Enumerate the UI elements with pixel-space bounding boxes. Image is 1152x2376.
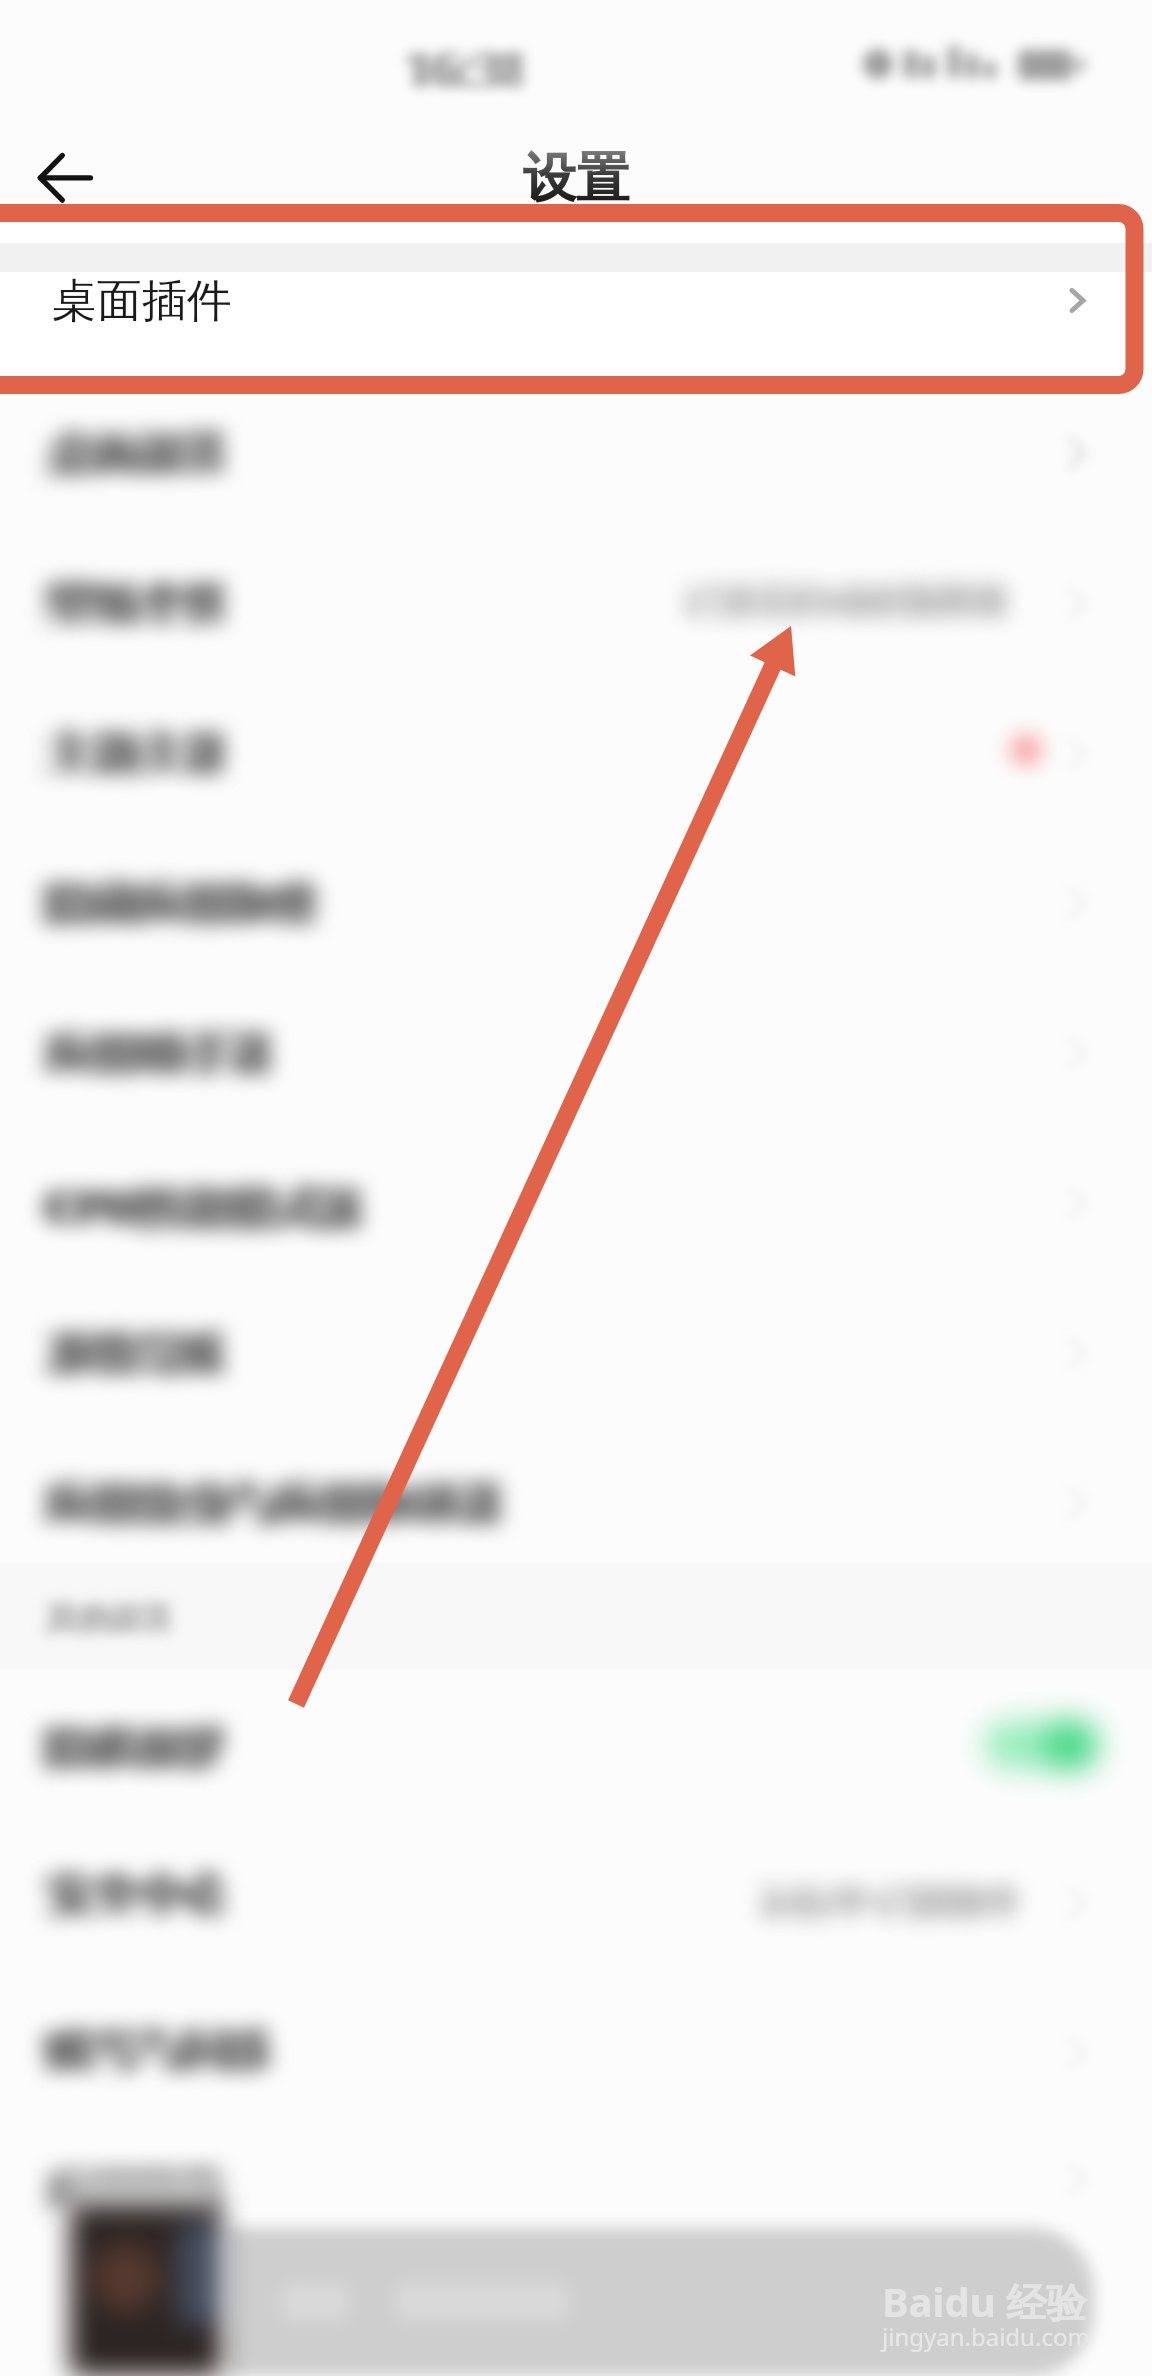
staticText: CPU性能模式设 bbox=[56, 1175, 377, 1238]
staticText: 主题主题 bbox=[52, 725, 236, 783]
button[interactable]: 桌面设置 bbox=[0, 396, 1152, 528]
staticText: 应用助手器 bbox=[52, 1025, 282, 1083]
staticText: 已开启自动更新检测 bbox=[682, 578, 1006, 623]
staticText: 桌面设置 bbox=[48, 425, 232, 483]
staticText: 应用推荐 bbox=[58, 2163, 234, 2218]
staticText: 运行中·已授权中 bbox=[756, 1876, 1018, 1925]
staticText: 已开启自动更新检测 bbox=[694, 578, 1018, 623]
staticText: 隐藏应用加密 bbox=[48, 875, 324, 933]
button[interactable]: Back bbox=[16, 138, 116, 222]
staticText: 设置 bbox=[523, 145, 629, 212]
staticText: 壁纸个性 bbox=[52, 575, 236, 633]
staticText: 壁纸个性 bbox=[56, 575, 240, 633]
staticText: 应用推荐 bbox=[50, 2163, 226, 2218]
staticText: 主题主题 bbox=[40, 725, 224, 783]
staticText: 系统导航 bbox=[52, 1325, 236, 1383]
staticText: 已开启自动更新检测 bbox=[685, 578, 1009, 623]
staticText: 其他设置 bbox=[45, 1598, 173, 1638]
staticText: 主题主题 bbox=[56, 725, 240, 783]
button[interactable]: 应用推荐 bbox=[0, 2126, 1152, 2258]
staticText: 桌面设置 bbox=[56, 425, 240, 483]
staticText: 隐私保护 bbox=[52, 1719, 236, 1777]
staticText: 应用推荐 bbox=[42, 2163, 218, 2218]
staticText: 桌面设置 bbox=[44, 425, 228, 483]
staticText: 应用推荐 bbox=[54, 2163, 230, 2218]
staticText: 16:38 bbox=[403, 36, 526, 101]
staticText: 账号与同步 bbox=[52, 2021, 282, 2079]
staticText: 其他设置 bbox=[42, 1598, 170, 1638]
staticText: 系统导航 bbox=[44, 1325, 228, 1383]
staticText: 系统导航 bbox=[48, 1325, 232, 1383]
staticText: 隐私保护 bbox=[48, 1719, 232, 1777]
staticText: CPU性能模式设 bbox=[40, 1175, 361, 1238]
staticText: 运行中·已授权中 bbox=[765, 1876, 1027, 1925]
button[interactable]: 隐藏应用 bbox=[0, 826, 1152, 958]
staticText: 安全中心 bbox=[52, 1866, 236, 1924]
button[interactable]: 桌面插件 bbox=[0, 222, 1152, 376]
button[interactable]: 应用助手 bbox=[0, 976, 1152, 1108]
staticText: Baidu 经验 bbox=[882, 2274, 1087, 2329]
staticText: 16:38 bbox=[406, 36, 529, 101]
staticText: 主题主题 bbox=[48, 725, 232, 783]
staticText: 已开启自动更新检测 bbox=[688, 578, 1012, 623]
staticText: 应用助手器 bbox=[40, 1025, 270, 1083]
button[interactable]: CPU性能模式 bbox=[0, 1126, 1152, 1258]
staticText: 账号与同步 bbox=[40, 2021, 270, 2079]
staticText: 账号与同步 bbox=[56, 2021, 286, 2079]
staticText: 隐私保护 bbox=[40, 1719, 224, 1777]
staticText: 桌面设置 bbox=[52, 425, 236, 483]
button[interactable]: 应用分身 bbox=[0, 1426, 1152, 1558]
staticText: 应用分身与应用加速器 bbox=[52, 1475, 512, 1533]
button[interactable]: 系统导航 bbox=[0, 1276, 1152, 1408]
staticText: 账号与同步 bbox=[48, 2021, 278, 2079]
staticText: 应用分身与应用加速器 bbox=[56, 1475, 516, 1533]
staticText: 应用分身与应用加速器 bbox=[48, 1475, 508, 1533]
staticText: 安全中心 bbox=[56, 1866, 240, 1924]
staticText: 桌面设置 bbox=[40, 425, 224, 483]
staticText: 安全中心 bbox=[40, 1866, 224, 1924]
staticText: 安全中心 bbox=[44, 1866, 228, 1924]
staticText: 16:38 bbox=[400, 36, 523, 101]
staticText: CPU性能模式设 bbox=[48, 1175, 369, 1238]
staticText: 已开启自动更新检测 bbox=[691, 578, 1015, 623]
staticText: 其他设置 bbox=[51, 1598, 179, 1638]
staticText: 系统导航 bbox=[56, 1325, 240, 1383]
staticText: 主题主题 bbox=[44, 725, 228, 783]
staticText: 隐私保护 bbox=[44, 1719, 228, 1777]
button[interactable]: 安全中心 bbox=[0, 1826, 1152, 1958]
button[interactable]: 隐私保护 bbox=[0, 1676, 1152, 1808]
staticText: 16:38 bbox=[412, 36, 535, 101]
staticText: 桌面插件 bbox=[52, 273, 232, 330]
staticText: 16:38 bbox=[409, 36, 532, 101]
staticText: jingyan.baidu.com bbox=[882, 2320, 1090, 2353]
button[interactable]: 主题 bbox=[0, 676, 1152, 808]
staticText: 隐藏应用加密 bbox=[40, 875, 316, 933]
staticText: 应用分身与应用加速器 bbox=[44, 1475, 504, 1533]
staticText: 应用助手器 bbox=[44, 1025, 274, 1083]
staticText: 壁纸个性 bbox=[40, 575, 224, 633]
staticText: CPU性能模式设 bbox=[52, 1175, 373, 1238]
staticText: CPU性能模式设 bbox=[44, 1175, 365, 1238]
staticText: 隐私保护 bbox=[56, 1719, 240, 1777]
staticText: 其他设置 bbox=[48, 1598, 176, 1638]
staticText: 安全中心 bbox=[48, 1866, 232, 1924]
button[interactable]: 壁纸个性 bbox=[0, 526, 1152, 658]
staticText: 隐藏应用加密 bbox=[44, 875, 320, 933]
staticText: 应用分身与应用加速器 bbox=[40, 1475, 500, 1533]
staticText: 隐藏应用加密 bbox=[52, 875, 328, 933]
staticText: 运行中·已授权中 bbox=[759, 1876, 1021, 1925]
staticText: 壁纸个性 bbox=[48, 575, 232, 633]
staticText: 应用推荐 bbox=[46, 2163, 222, 2218]
staticText: 隐藏应用加密 bbox=[56, 875, 332, 933]
staticText: 账号与同步 bbox=[44, 2021, 274, 2079]
staticText: 应用助手器 bbox=[56, 1025, 286, 1083]
staticText: 应用助手器 bbox=[48, 1025, 278, 1083]
staticText: 壁纸个性 bbox=[44, 575, 228, 633]
staticText: 运行中·已授权中 bbox=[762, 1876, 1024, 1925]
button[interactable]: 账号与同步 bbox=[0, 1976, 1152, 2108]
staticText: 运行中·已授权中 bbox=[768, 1876, 1030, 1925]
staticText: 系统导航 bbox=[40, 1325, 224, 1383]
